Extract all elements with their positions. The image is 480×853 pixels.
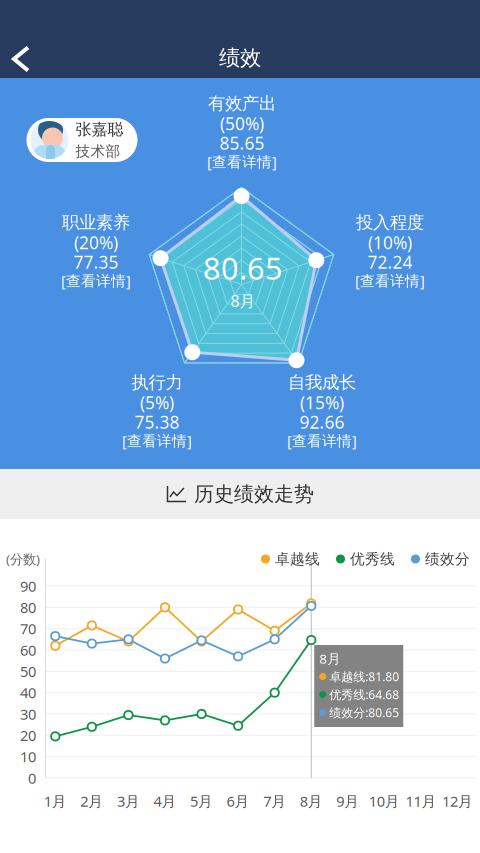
staticText: 8月 [319,650,340,667]
staticText: 20 [20,726,36,745]
staticText: 有效产出 [208,93,276,114]
staticText: 5月 [190,791,213,811]
staticText: (20%) [74,231,118,254]
staticText: 绩效 [219,45,261,71]
staticText: 12月 [442,791,473,811]
staticText: 70 [20,619,36,638]
staticText: 9月 [336,791,359,811]
staticText: 绩效分:80.65 [329,704,399,720]
button[interactable]: [查看详情] [122,431,192,449]
staticText: 4月 [153,791,176,811]
staticText: 0 [28,768,36,788]
staticText: 7月 [263,791,286,811]
staticText: 85.65 [219,131,264,154]
staticText: 2月 [80,791,103,811]
staticText: 60 [20,640,36,660]
staticText: [查看详情] [61,271,131,290]
staticText: 75.38 [134,410,179,433]
staticText: (5%) [140,391,174,414]
staticText: 绩效分 [425,550,470,568]
staticText: 卓越线:81.80 [329,668,399,684]
staticText: 技术部 [75,142,120,160]
staticText: 8月 [230,290,255,311]
staticText: 6月 [227,791,250,811]
staticText: 40 [20,683,36,702]
staticText: 50 [20,662,36,681]
staticText: 张嘉聪 [75,120,123,139]
staticText: 30 [20,704,36,724]
staticText: 10 [20,747,36,766]
staticText: (50%) [220,112,264,135]
staticText: 3月 [117,791,140,811]
staticText: 8月 [300,791,323,811]
button[interactable]: [查看详情] [207,152,277,170]
button[interactable]: [查看详情] [287,431,357,449]
staticText: 80.65 [203,247,283,288]
staticText: [查看详情] [287,431,357,450]
button[interactable]: 张嘉聪 [26,118,137,162]
staticText: (15%) [300,391,344,414]
staticText: 历史绩效走势 [194,482,314,506]
staticText: [查看详情] [355,271,425,290]
staticText: 11月 [405,791,436,811]
staticText: 投入程度 [356,212,424,233]
staticText: 执行力 [131,372,182,393]
staticText: 自我成长 [288,372,356,393]
button[interactable]: [查看详情] [355,271,425,289]
staticText: 72.24 [367,250,412,273]
staticText: 职业素养 [62,212,130,233]
staticText: 80 [20,598,36,617]
staticText: 1月 [44,791,67,811]
staticText: 92.66 [299,410,344,433]
staticText: 90 [20,576,36,596]
staticText: 77.35 [73,250,118,273]
staticText: 优秀线:64.68 [329,686,399,702]
button[interactable]: [查看详情] [61,271,131,289]
staticText: 卓越线 [275,550,320,568]
staticText: [查看详情] [122,431,192,450]
staticText: 10月 [369,791,400,811]
button[interactable]: Back [0,0,47,81]
staticText: 优秀线 [350,550,395,568]
staticText: [查看详情] [207,152,277,171]
staticText: (10%) [368,231,412,254]
staticText: (分数) [6,550,40,568]
